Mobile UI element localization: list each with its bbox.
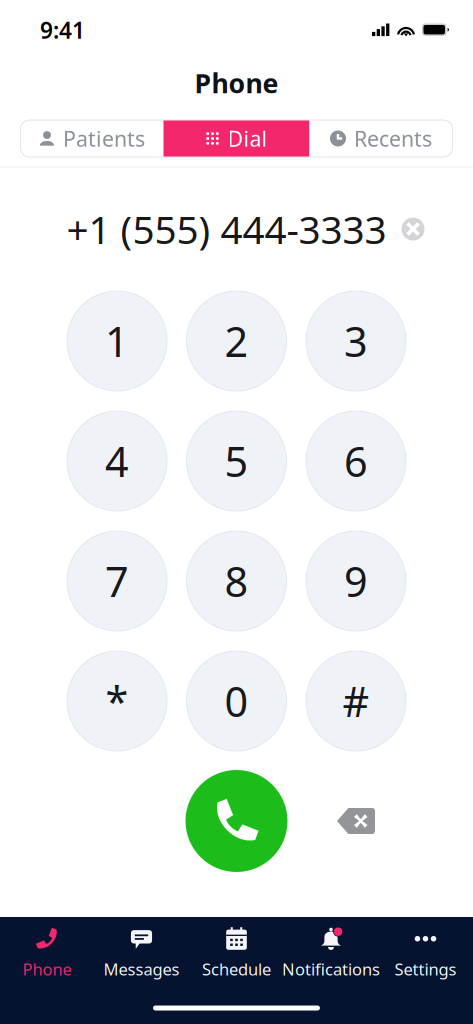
staticText: Settings [394, 958, 456, 980]
staticText: * [105, 674, 128, 728]
button[interactable]: 4 [67, 411, 167, 511]
button[interactable]: * [67, 651, 167, 751]
staticText: 9:41 [40, 15, 85, 45]
staticText: 6 [344, 434, 368, 488]
staticText: Dial [227, 124, 267, 153]
button[interactable]: Delete [324, 789, 388, 853]
button[interactable]: Dial [163, 120, 309, 157]
staticText: 1 [105, 314, 129, 368]
button[interactable]: Phone [0, 929, 107, 977]
staticText: Notifications [282, 958, 380, 980]
staticText: Patients [63, 124, 145, 153]
button[interactable]: 8 [186, 531, 286, 631]
button[interactable]: Settings [365, 929, 473, 977]
staticText: Schedule [202, 958, 271, 980]
staticText: 7 [105, 554, 129, 608]
staticText: 4 [105, 434, 129, 488]
button[interactable]: 2 [186, 291, 286, 391]
button[interactable]: 0 [186, 651, 286, 751]
staticText: 5 [224, 434, 248, 488]
button[interactable]: 9 [306, 531, 406, 631]
staticText: Recents [354, 124, 432, 153]
button[interactable]: 3 [306, 291, 406, 391]
button[interactable]: 6 [306, 411, 406, 511]
button[interactable]: Patients [20, 120, 163, 157]
staticText: +1 (555) 444-3333 [66, 203, 386, 255]
staticText: Phone [194, 65, 278, 101]
staticText: 2 [224, 314, 248, 368]
staticText: 0 [224, 674, 248, 728]
button[interactable]: 1 [67, 291, 167, 391]
button[interactable]: 7 [67, 531, 167, 631]
button[interactable]: # [306, 651, 406, 751]
staticText: Phone [22, 958, 71, 980]
button[interactable]: Notifications [271, 929, 391, 977]
button[interactable]: Messages [81, 929, 201, 977]
button[interactable]: Recents [309, 120, 452, 157]
staticText: 8 [224, 554, 248, 608]
button[interactable]: Clear number [401, 217, 424, 240]
staticText: 3 [344, 314, 368, 368]
staticText: Messages [103, 958, 179, 980]
staticText: 9 [344, 554, 368, 608]
button[interactable]: Schedule [176, 929, 296, 977]
button[interactable]: 5 [186, 411, 286, 511]
button[interactable]: Call [185, 770, 287, 872]
staticText: # [342, 674, 369, 728]
